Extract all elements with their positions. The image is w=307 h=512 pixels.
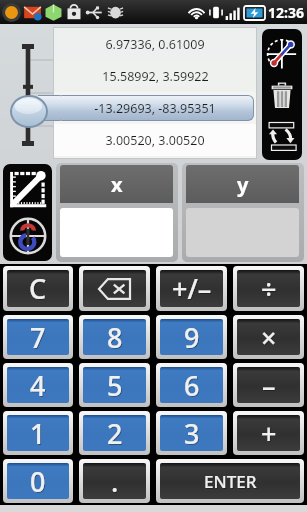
button[interactable]: Graph: [6, 167, 50, 211]
button[interactable]: 15.58992, 3.59922: [54, 60, 256, 92]
staticText: -13.29693, -83.95351: [94, 100, 216, 117]
staticText: 2: [108, 416, 124, 451]
button[interactable]: -13.29693, -83.95351: [54, 92, 256, 124]
button[interactable]: +: [237, 415, 300, 451]
button[interactable]: 6.97336, 0.61009: [54, 28, 256, 60]
staticText: 0: [30, 463, 46, 499]
staticText: 8: [107, 319, 123, 355]
button[interactable]: y: [186, 165, 299, 257]
staticText: C: [29, 270, 47, 307]
staticText: 9: [185, 320, 201, 355]
button[interactable]: ÷: [237, 270, 300, 307]
button[interactable]: Slider handle: [10, 95, 48, 128]
button[interactable]: x: [60, 165, 173, 257]
staticText: 15.58992, 3.59922: [102, 68, 209, 85]
staticText: ENTER: [205, 471, 258, 494]
staticText: ×: [262, 320, 278, 355]
button[interactable]: Delete: [264, 77, 300, 113]
staticText: 1: [31, 416, 47, 451]
staticText: 6: [184, 367, 200, 403]
staticText: .: [111, 463, 119, 499]
staticText: 4: [30, 367, 46, 403]
staticText: 8: [108, 320, 124, 355]
staticText: –: [262, 367, 276, 403]
staticText: ×: [261, 319, 277, 355]
button[interactable]: 0: [7, 463, 69, 499]
button[interactable]: Swap: [264, 118, 300, 154]
button[interactable]: 6: [160, 367, 223, 403]
staticText: 4: [31, 368, 47, 403]
button[interactable]: 8: [83, 319, 146, 355]
staticText: .: [112, 464, 120, 499]
staticText: 9: [184, 319, 200, 355]
staticText: +: [261, 415, 277, 451]
staticText: x: [111, 171, 123, 198]
button[interactable]: +/–: [160, 270, 223, 307]
button[interactable]: Backspace: [83, 270, 146, 307]
button[interactable]: 1: [7, 415, 69, 451]
staticText: ENTER: [204, 470, 257, 493]
button[interactable]: .: [83, 463, 146, 499]
staticText: y: [237, 171, 249, 198]
staticText: 12:36: [268, 3, 304, 22]
staticText: 6: [185, 368, 201, 403]
staticText: 2: [107, 415, 123, 451]
staticText: 7: [30, 319, 46, 355]
staticText: C: [30, 271, 48, 307]
staticText: ÷: [262, 271, 278, 307]
button[interactable]: 3.00520, 3.00520: [54, 124, 256, 156]
button[interactable]: 4: [7, 367, 69, 403]
button[interactable]: Plot point: [264, 35, 300, 71]
staticText: +/–: [173, 271, 213, 307]
staticText: 0: [31, 464, 47, 499]
button[interactable]: ENTER: [160, 463, 300, 499]
staticText: –: [263, 368, 277, 403]
button[interactable]: C: [7, 270, 69, 307]
staticText: 3.00520, 3.00520: [105, 132, 205, 149]
button[interactable]: 2: [83, 415, 146, 451]
staticText: +/–: [172, 270, 212, 307]
button[interactable]: 5: [83, 367, 146, 403]
staticText: 3: [185, 416, 201, 451]
staticText: 3: [184, 415, 200, 451]
button[interactable]: –: [237, 367, 300, 403]
button[interactable]: 9: [160, 319, 223, 355]
staticText: 7: [31, 320, 47, 355]
button[interactable]: Target: [6, 214, 50, 258]
staticText: 5: [107, 367, 123, 403]
staticText: 5: [108, 368, 124, 403]
staticText: 1: [30, 415, 46, 451]
other: Backspace: [98, 278, 131, 300]
button[interactable]: ×: [237, 319, 300, 355]
staticText: +: [262, 416, 278, 451]
button[interactable]: 3: [160, 415, 223, 451]
staticText: 6.97336, 0.61009: [105, 36, 205, 53]
button[interactable]: 7: [7, 319, 69, 355]
staticText: ÷: [261, 270, 277, 307]
